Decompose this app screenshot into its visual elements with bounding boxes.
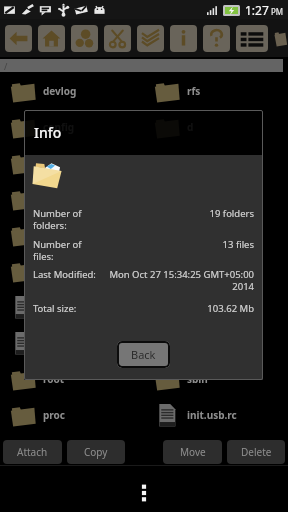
staticText: d: [187, 120, 194, 134]
staticText: 103.62 Mb: [113, 302, 254, 315]
button[interactable]: init.rc: [144, 325, 288, 361]
button[interactable]: Copy: [67, 440, 125, 464]
button[interactable]: Move: [163, 440, 222, 464]
staticText: 13 files: [113, 238, 254, 251]
staticText: Last Modified:: [33, 268, 96, 281]
button[interactable]: efs: [0, 181, 144, 217]
button[interactable]: init.rc: [0, 289, 144, 325]
button[interactable]: data: [0, 145, 144, 181]
button[interactable]: Attach: [3, 440, 62, 464]
button[interactable]: etc: [144, 181, 288, 217]
staticText: root: [43, 372, 65, 386]
button[interactable]: Help: [203, 25, 230, 52]
staticText: Delete: [241, 445, 272, 459]
staticText: Back: [131, 347, 156, 362]
staticText: Total size:: [33, 302, 113, 315]
staticText: Attach: [17, 445, 48, 459]
button[interactable]: Home: [38, 25, 65, 52]
staticText: mnt: [43, 264, 64, 278]
staticText: 1:27: [245, 2, 269, 18]
staticText: Copy: [84, 445, 108, 459]
button[interactable]: Info: [170, 25, 197, 52]
button[interactable]: Back: [117, 341, 170, 368]
button[interactable]: rfs: [144, 73, 288, 109]
button[interactable]: proc: [0, 397, 144, 433]
button[interactable]: Back: [5, 25, 32, 52]
button[interactable]: Cut: [104, 25, 131, 52]
button[interactable]: sbin: [144, 361, 288, 397]
staticText: config: [43, 120, 75, 134]
staticText: rfs: [187, 84, 201, 98]
staticText: data: [43, 156, 66, 170]
staticText: Info: [34, 123, 62, 142]
button[interactable]: List view: [236, 25, 268, 52]
button[interactable]: mnt: [0, 253, 144, 289]
button[interactable]: default.prop: [144, 289, 288, 325]
staticText: factory: [43, 228, 79, 242]
button[interactable]: lib: [144, 217, 288, 253]
staticText: PM: [271, 6, 284, 17]
staticText: Number of files:: [33, 238, 113, 262]
staticText: 19 folders: [113, 207, 254, 220]
button[interactable]: d: [144, 109, 288, 145]
staticText: init.rc: [43, 300, 73, 314]
staticText: sbin: [187, 372, 208, 386]
button[interactable]: devlog: [0, 73, 144, 109]
button[interactable]: config: [0, 109, 144, 145]
staticText: devlog: [43, 84, 77, 98]
staticText: init.usb.rc: [187, 408, 237, 422]
button[interactable]: Bookmarks: [71, 25, 98, 52]
button[interactable]: Select all: [137, 25, 164, 52]
staticText: preload: [187, 264, 226, 278]
staticText: Mon Oct 27 15:34:25 GMT+05:00 2014: [101, 268, 254, 292]
button[interactable]: Delete: [227, 440, 285, 464]
button[interactable]: root: [0, 361, 144, 397]
button[interactable]: preload: [144, 253, 288, 289]
button[interactable]: dev: [144, 145, 288, 181]
button[interactable]: More options: [129, 474, 159, 504]
staticText: /: [4, 60, 8, 72]
staticText: Move: [180, 445, 206, 459]
button[interactable]: factory: [0, 217, 144, 253]
staticText: Number of folders:: [33, 207, 113, 231]
staticText: default.prop: [187, 300, 249, 314]
button[interactable]: init.usb.rc: [0, 325, 144, 361]
button[interactable]: init.usb.rc: [144, 397, 288, 433]
staticText: proc: [43, 408, 65, 422]
